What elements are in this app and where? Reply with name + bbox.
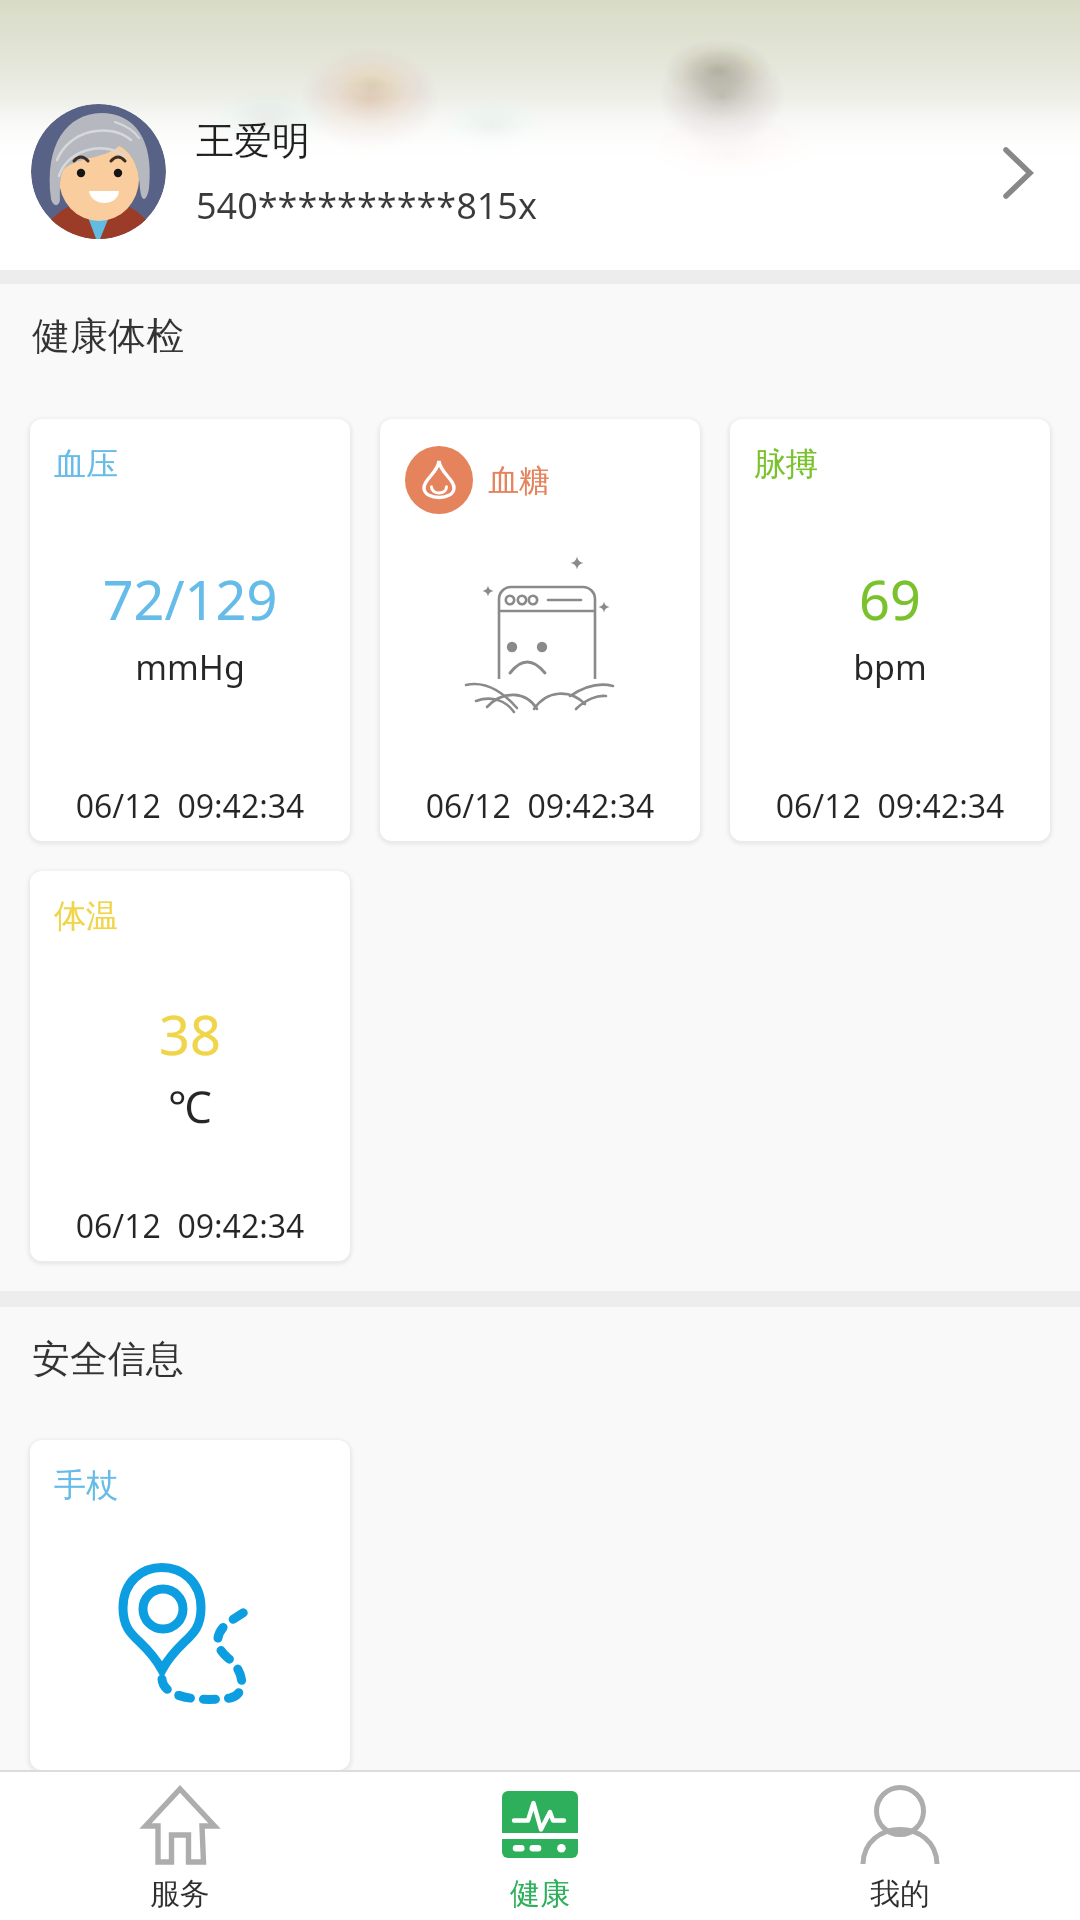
staticText: 69 bbox=[730, 562, 1050, 636]
button[interactable]: 体温 bbox=[30, 871, 350, 1261]
staticText: 安全信息 bbox=[32, 1335, 184, 1383]
staticText: 健康 bbox=[510, 1875, 570, 1913]
staticText: 手杖 bbox=[54, 1465, 118, 1505]
staticText: 38 bbox=[30, 997, 350, 1071]
button[interactable]: 我的 bbox=[720, 1772, 1080, 1920]
staticText: 王爱明 bbox=[196, 117, 310, 165]
staticText: ℃ bbox=[30, 1076, 350, 1136]
staticText: 540**********815x bbox=[196, 181, 537, 230]
staticText: 服务 bbox=[150, 1875, 210, 1913]
other: Open profile bbox=[988, 141, 1048, 201]
staticText: mmHg bbox=[30, 644, 350, 690]
staticText: 06/12 09:42:34 bbox=[730, 784, 1050, 828]
staticText: 06/12 09:42:34 bbox=[30, 784, 350, 828]
staticText: 我的 bbox=[870, 1875, 930, 1913]
staticText: 健康体检 bbox=[32, 312, 184, 360]
button[interactable]: 健康 bbox=[360, 1772, 720, 1920]
button[interactable]: 血压 bbox=[30, 419, 350, 841]
staticText: 06/12 09:42:34 bbox=[30, 1204, 350, 1248]
staticText: 血压 bbox=[54, 444, 118, 484]
button[interactable]: 血糖 bbox=[380, 419, 700, 841]
button[interactable]: 手杖 bbox=[30, 1440, 350, 1770]
staticText: 72/129 bbox=[30, 562, 350, 636]
button[interactable]: 服务 bbox=[0, 1772, 360, 1920]
staticText: bpm bbox=[730, 644, 1050, 690]
staticText: 06/12 09:42:34 bbox=[380, 784, 700, 828]
staticText: 脉搏 bbox=[754, 444, 818, 484]
button[interactable]: 脉搏 bbox=[730, 419, 1050, 841]
staticText: 体温 bbox=[54, 896, 118, 936]
staticText: 血糖 bbox=[488, 461, 550, 500]
button[interactable]: 王爱明 bbox=[0, 0, 1080, 270]
